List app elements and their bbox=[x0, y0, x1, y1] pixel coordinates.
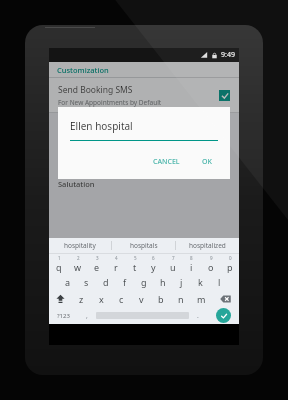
staticText: 2 bbox=[77, 255, 80, 261]
staticText: ?123 bbox=[57, 312, 70, 320]
staticText: h bbox=[160, 276, 166, 288]
staticText: , bbox=[86, 311, 88, 320]
button[interactable]: m bbox=[191, 290, 211, 307]
staticText: w bbox=[74, 261, 82, 273]
staticText: j bbox=[180, 276, 183, 288]
button[interactable]: Send Booking SMS bbox=[49, 78, 239, 112]
staticText: CANCEL bbox=[153, 157, 180, 167]
staticText: Ellen hospital bbox=[70, 119, 133, 133]
button[interactable]: hospitality bbox=[49, 238, 111, 253]
staticText: l bbox=[218, 276, 221, 288]
staticText: Send Booking SMS bbox=[58, 84, 133, 96]
button[interactable]: z bbox=[72, 290, 91, 307]
button[interactable]: ?123 bbox=[49, 307, 78, 324]
staticText: z bbox=[79, 293, 84, 305]
staticText: t bbox=[133, 261, 137, 273]
button[interactable]: CANCEL bbox=[147, 153, 186, 171]
button[interactable]: 3 bbox=[87, 254, 106, 273]
button[interactable]: OK bbox=[196, 153, 218, 171]
staticText: q bbox=[56, 261, 62, 273]
staticText: u bbox=[170, 261, 176, 273]
staticText: hospitalized bbox=[189, 241, 226, 250]
button[interactable]: g bbox=[134, 273, 153, 290]
button[interactable]: d bbox=[96, 273, 115, 290]
staticText: 7 bbox=[172, 255, 175, 261]
staticText: . bbox=[197, 311, 199, 320]
button[interactable]: Space bbox=[96, 311, 189, 320]
staticText: n bbox=[178, 293, 184, 305]
staticText: hospitals bbox=[130, 241, 158, 250]
staticText: 0 bbox=[229, 255, 232, 261]
staticText: c bbox=[119, 293, 124, 305]
staticText: r bbox=[114, 261, 118, 273]
staticText: i bbox=[190, 261, 193, 273]
button[interactable]: 6 bbox=[144, 254, 163, 273]
button[interactable]: a bbox=[58, 273, 77, 290]
staticText: s bbox=[84, 276, 89, 288]
staticText: OK bbox=[202, 157, 212, 167]
button[interactable]: k bbox=[191, 273, 210, 290]
staticText: 4 bbox=[115, 255, 118, 261]
button[interactable]: c bbox=[111, 290, 131, 307]
button[interactable]: h bbox=[153, 273, 172, 290]
staticText: g bbox=[141, 276, 147, 288]
staticText: 6 bbox=[152, 255, 155, 261]
button[interactable]: Send Booking SMS checkbox bbox=[219, 90, 230, 101]
button[interactable]: b bbox=[151, 290, 171, 307]
staticText: p bbox=[227, 261, 233, 273]
button[interactable]: 9 bbox=[201, 254, 220, 273]
button[interactable]: f bbox=[115, 273, 134, 290]
staticText: m bbox=[197, 293, 206, 305]
button[interactable]: s bbox=[77, 273, 96, 290]
button[interactable]: 7 bbox=[163, 254, 182, 273]
staticText: d bbox=[103, 276, 109, 288]
staticText: hospitality bbox=[64, 241, 96, 250]
button[interactable]: l bbox=[210, 273, 229, 290]
staticText: 1 bbox=[58, 255, 61, 261]
staticText: 5 bbox=[134, 255, 137, 261]
button[interactable]: x bbox=[91, 290, 111, 307]
button[interactable]: 0 bbox=[220, 254, 239, 273]
button[interactable]: 8 bbox=[182, 254, 201, 273]
staticText: a bbox=[65, 276, 71, 288]
button[interactable]: 1 bbox=[49, 254, 68, 273]
button[interactable]: Backspace bbox=[211, 290, 239, 307]
button[interactable]: Shift bbox=[49, 290, 72, 307]
button[interactable]: hospitalized bbox=[176, 238, 239, 253]
staticText: For New Appointments by Default bbox=[58, 98, 162, 107]
staticText: e bbox=[94, 261, 100, 273]
button[interactable]: j bbox=[172, 273, 191, 290]
button[interactable]: . bbox=[189, 307, 207, 324]
staticText: Customization bbox=[57, 65, 109, 75]
button[interactable]: , bbox=[78, 307, 96, 324]
button[interactable]: hospitals bbox=[112, 238, 175, 253]
staticText: v bbox=[139, 293, 144, 305]
staticText: 9 bbox=[210, 255, 213, 261]
staticText: f bbox=[123, 276, 127, 288]
staticText: Salutation bbox=[58, 179, 95, 189]
button[interactable]: 4 bbox=[106, 254, 125, 273]
button[interactable]: 5 bbox=[125, 254, 144, 273]
staticText: k bbox=[198, 276, 203, 288]
staticText: x bbox=[99, 293, 104, 305]
button[interactable]: n bbox=[171, 290, 191, 307]
staticText: 3 bbox=[96, 255, 99, 261]
button[interactable]: v bbox=[131, 290, 151, 307]
staticText: o bbox=[208, 261, 214, 273]
staticText: y bbox=[151, 261, 156, 273]
button[interactable]: Enter bbox=[216, 308, 231, 323]
button[interactable]: 2 bbox=[68, 254, 87, 273]
staticText: b bbox=[158, 293, 164, 305]
staticText: 9:49 bbox=[221, 50, 235, 60]
staticText: 8 bbox=[190, 255, 193, 261]
